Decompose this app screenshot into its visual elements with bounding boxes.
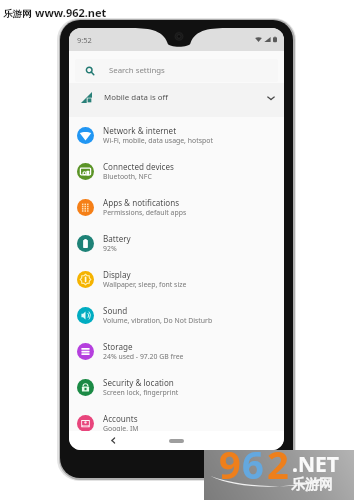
staticText: 92% (103, 244, 117, 253)
button[interactable]: Connected devices (69, 153, 284, 189)
staticText: 9 (219, 450, 241, 488)
button[interactable]: Mobile data is off (69, 83, 284, 117)
staticText: Battery (103, 233, 131, 244)
staticText: Bluetooth, NFC (103, 172, 152, 181)
button[interactable]: Back (108, 435, 119, 446)
staticText: .NET (292, 450, 339, 479)
staticText: 乐游网 (3, 8, 32, 20)
button[interactable]: Battery (69, 225, 284, 261)
button[interactable]: Storage (69, 333, 284, 369)
staticText: 9:52 (77, 35, 92, 45)
staticText: Google, IM (103, 424, 139, 433)
staticText: Wi-Fi, mobile, data usage, hotspot (103, 136, 213, 145)
staticText: 2 (267, 450, 289, 488)
staticText: Wallpaper, sleep, font size (103, 280, 187, 289)
button[interactable]: Home (169, 439, 184, 443)
staticText: Connected devices (103, 161, 174, 172)
staticText: 24% used - 97.20 GB free (103, 352, 184, 361)
staticText: Security & location (103, 377, 174, 388)
staticText: Permissions, default apps (103, 208, 187, 217)
button[interactable]: Network & internet (69, 117, 284, 153)
staticText: 6 (242, 450, 264, 488)
staticText: 乐游网 (291, 476, 333, 494)
button[interactable]: Accounts (69, 405, 284, 441)
staticText: Network & internet (103, 125, 177, 136)
staticText: Search settings (109, 65, 165, 76)
button[interactable]: Search settings (75, 59, 278, 82)
staticText: Accounts (103, 413, 138, 424)
staticText: www.962.net (35, 5, 107, 20)
staticText: Apps & notifications (103, 197, 180, 208)
staticText: Mobile data is off (104, 92, 169, 103)
button[interactable]: Security & location (69, 369, 284, 405)
button[interactable]: Sound (69, 297, 284, 333)
staticText: Storage (103, 341, 133, 352)
button[interactable]: Apps & notifications (69, 189, 284, 225)
button[interactable]: Display (69, 261, 284, 297)
staticText: Volume, vibration, Do Not Disturb (103, 316, 213, 325)
staticText: Display (103, 269, 131, 280)
staticText: Sound (103, 305, 128, 316)
staticText: Screen lock, fingerprint (103, 388, 179, 397)
